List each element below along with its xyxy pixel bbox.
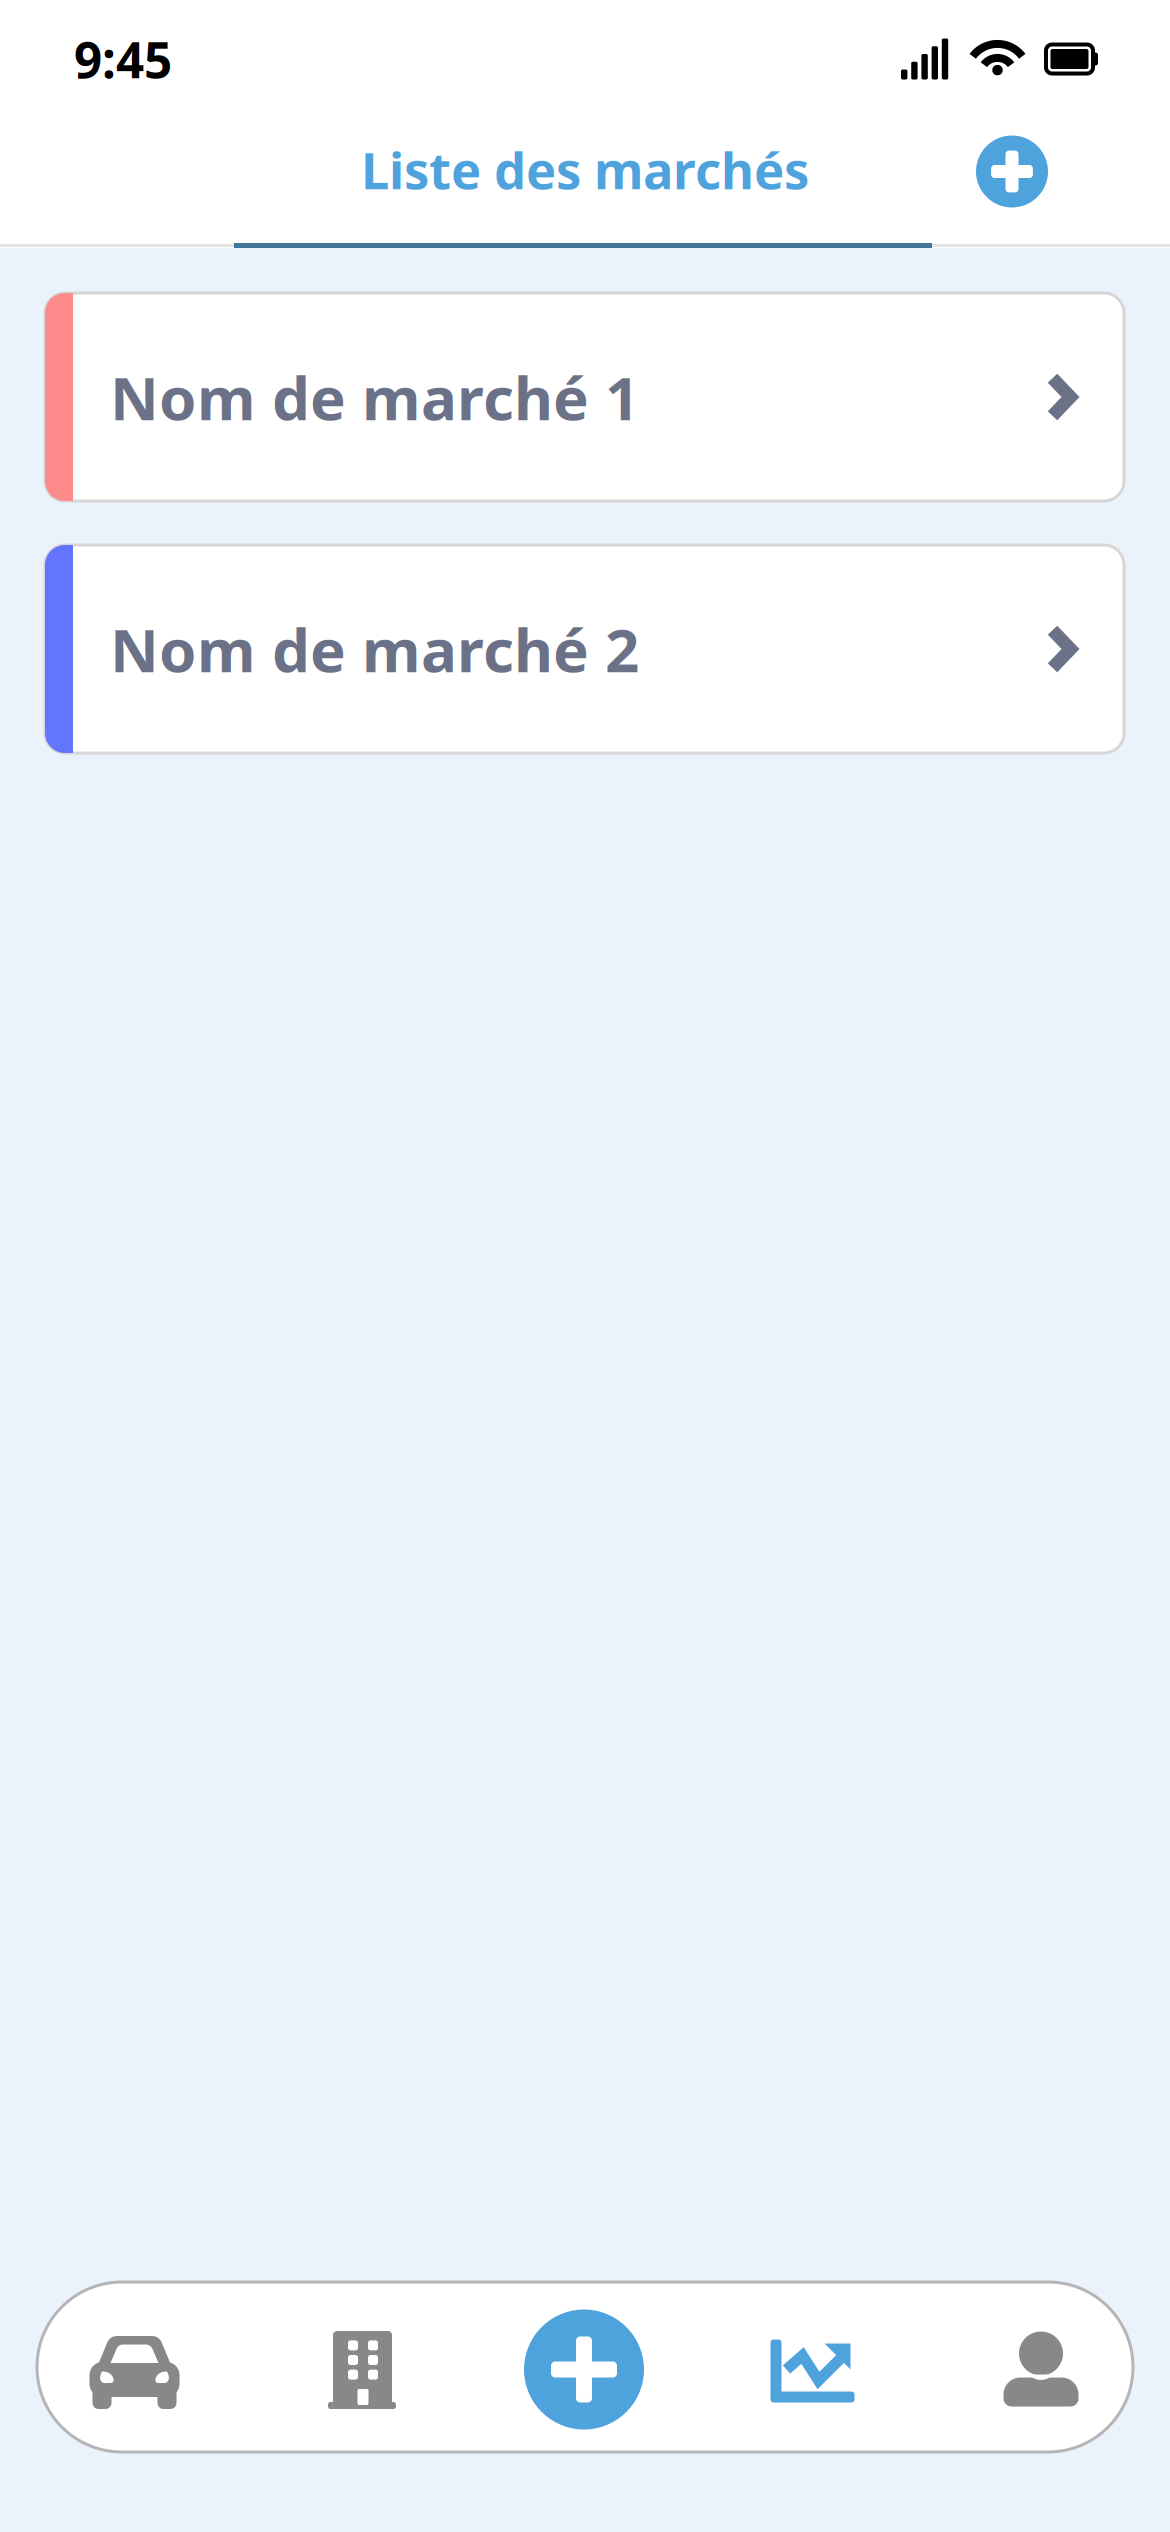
staticText: Nom de marché 1 [110, 357, 639, 437]
button[interactable]: Nom de marché 2 [0, 545, 1170, 753]
button[interactable]: Statistiques [676, 2282, 949, 2452]
button[interactable]: Ajouter un marché [976, 135, 1048, 225]
button[interactable]: Ajouter [492, 2282, 676, 2452]
button[interactable]: Entreprises [232, 2282, 492, 2452]
staticText: Liste des marchés [361, 136, 809, 203]
button[interactable]: Nom de marché 1 [0, 293, 1170, 501]
button[interactable]: Véhicules [37, 2282, 232, 2452]
staticText: 9:45 [74, 26, 172, 92]
button[interactable]: Profil [949, 2282, 1133, 2452]
staticText: Nom de marché 2 [110, 609, 639, 689]
